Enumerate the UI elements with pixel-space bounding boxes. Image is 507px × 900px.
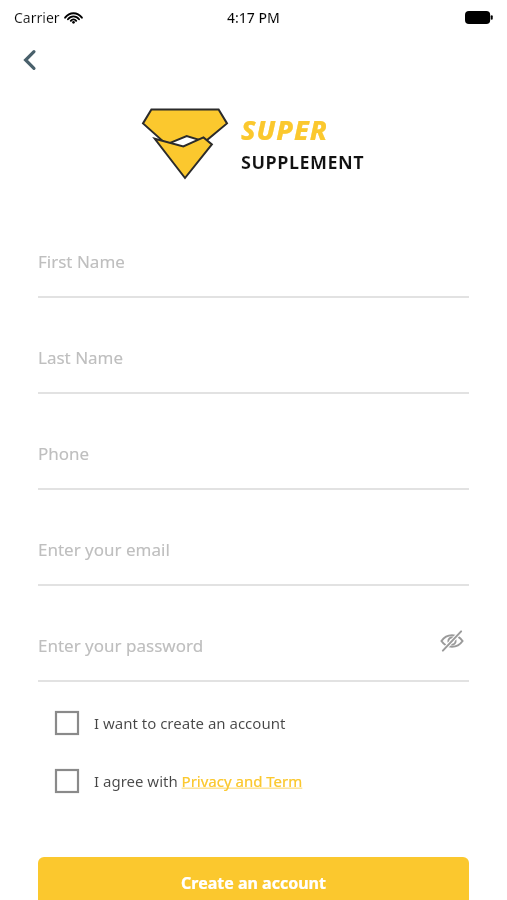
button[interactable]: Show password (435, 624, 469, 658)
staticText: Enter your password (38, 634, 204, 657)
staticText: I agree with Privacy and Term (94, 771, 303, 791)
button[interactable]: Create an account (38, 857, 469, 900)
button[interactable]: Last Name (38, 330, 469, 426)
staticText: Phone (38, 442, 90, 465)
button[interactable]: Phone (38, 426, 469, 522)
staticText: 4:17 PM (227, 8, 280, 27)
staticText: SUPPLEMENT (241, 150, 365, 175)
button[interactable]: Enter your password (38, 618, 469, 714)
button[interactable]: Enter your email (38, 522, 469, 618)
staticText: Last Name (38, 346, 124, 369)
staticText: I want to create an account (94, 713, 286, 733)
staticText: Enter your email (38, 538, 170, 561)
button[interactable]: I want to create an account (56, 712, 451, 734)
button[interactable]: I agree with Privacy and Term (56, 770, 451, 792)
staticText: SUPER (241, 111, 328, 148)
staticText: Carrier (14, 8, 60, 27)
staticText: Create an account (181, 872, 326, 894)
button[interactable]: Back (8, 38, 52, 82)
button[interactable]: First Name (38, 234, 469, 330)
staticText: First Name (38, 250, 125, 273)
